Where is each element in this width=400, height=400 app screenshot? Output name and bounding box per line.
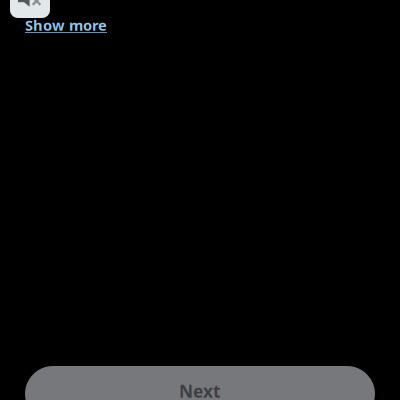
staticText: Show more <box>25 15 107 35</box>
button[interactable]: Next <box>25 366 375 400</box>
button[interactable]: Show more <box>25 15 107 35</box>
button[interactable]: Mute <box>10 0 50 18</box>
staticText: Next <box>179 379 221 400</box>
